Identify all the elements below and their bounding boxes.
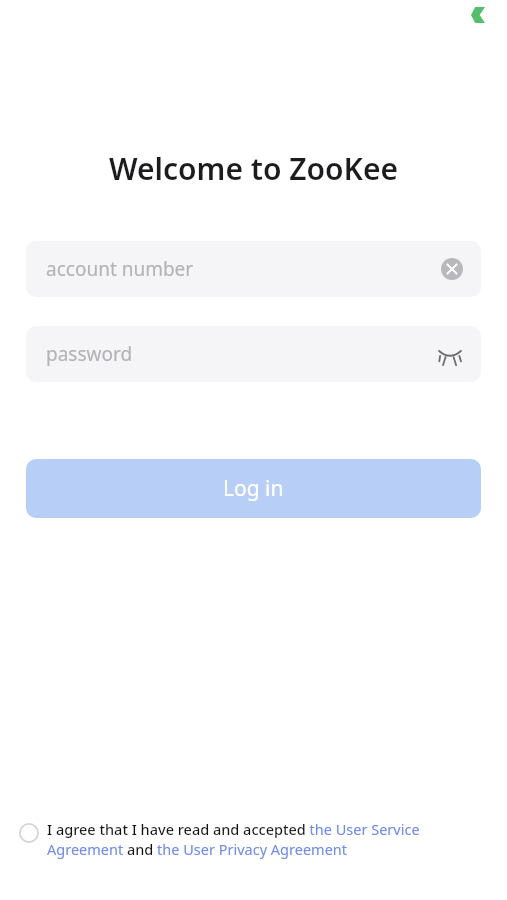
button[interactable]: account number — [26, 241, 481, 297]
button[interactable]: Clear account number — [439, 256, 465, 282]
other: Agree checkbox — [18, 822, 39, 843]
button[interactable]: password — [26, 326, 481, 382]
button[interactable]: Agree checkbox — [18, 819, 493, 860]
staticText: Welcome to ZooKee — [109, 148, 399, 189]
button[interactable]: Log in — [26, 459, 481, 518]
staticText: I agree that I have read and accepted th… — [47, 819, 493, 860]
other: Status indicator — [471, 7, 485, 23]
staticText: password — [46, 341, 435, 367]
staticText: Log in — [223, 474, 284, 503]
staticText: account number — [46, 256, 439, 282]
button[interactable]: Show password — [435, 339, 465, 369]
